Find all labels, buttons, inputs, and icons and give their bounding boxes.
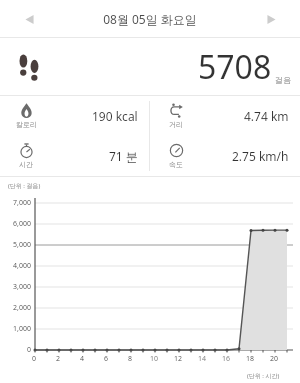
staticText: 12 (174, 354, 183, 364)
button[interactable]: 시간 (0, 136, 149, 176)
staticText: 5,000 (13, 240, 31, 250)
staticText: 5708 (198, 45, 272, 89)
staticText: 71 분 (109, 148, 138, 164)
staticText: 0 (26, 345, 31, 355)
button[interactable]: Previous day (14, 4, 44, 34)
staticText: (단위 : 시간) (247, 372, 280, 380)
staticText: 거리 (169, 120, 183, 129)
staticText: 6 (104, 354, 109, 364)
staticText: 시간 (19, 160, 33, 169)
staticText: 16 (222, 354, 231, 364)
staticText: 2 (56, 354, 61, 364)
staticText: 4,000 (13, 261, 31, 271)
staticText: 08월 05일 화요일 (103, 11, 197, 27)
staticText: 18 (246, 354, 255, 364)
staticText: 1,000 (13, 324, 31, 334)
button[interactable]: 속도 (150, 136, 300, 176)
staticText: 3,000 (13, 282, 31, 292)
staticText: 20 (270, 354, 279, 364)
staticText: (단위 : 걸음) (8, 182, 41, 190)
staticText: 2,000 (13, 303, 31, 313)
staticText: 4.74 km (244, 108, 289, 124)
staticText: 4 (80, 354, 85, 364)
staticText: 6,000 (13, 219, 31, 229)
staticText: 0 (32, 354, 37, 364)
button[interactable]: 거리 (150, 96, 300, 136)
staticText: 190 kcal (92, 108, 138, 124)
staticText: 걸음 (275, 75, 291, 85)
staticText: 14 (198, 354, 207, 364)
button[interactable]: 5708 (0, 38, 300, 95)
staticText: 10 (150, 354, 159, 364)
staticText: 7,000 (13, 198, 31, 208)
staticText: 2.75 km/h (232, 148, 289, 164)
staticText: 속도 (169, 160, 183, 169)
staticText: 8 (128, 354, 133, 364)
button[interactable]: 칼로리 (0, 96, 149, 136)
button[interactable]: Next day (256, 4, 286, 34)
staticText: 칼로리 (16, 120, 37, 129)
